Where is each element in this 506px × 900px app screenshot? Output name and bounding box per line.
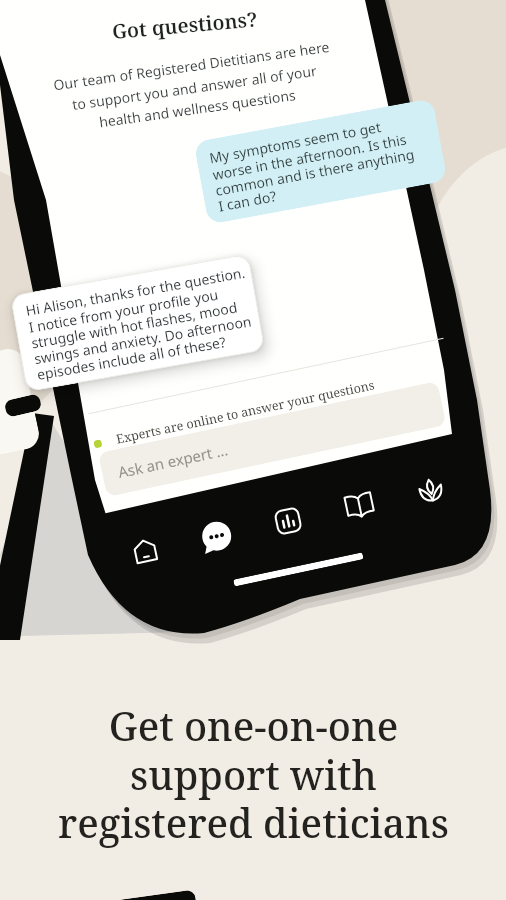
staticText: Got questions? xyxy=(108,0,262,62)
staticText: Ask an expert ... xyxy=(116,439,230,482)
button[interactable]: Hi Alison, thanks for the question. I no… xyxy=(7,245,269,400)
button[interactable] xyxy=(407,467,455,514)
button[interactable]: Ask an expert ... xyxy=(98,381,447,497)
staticText: Get one-on-one support with registered d… xyxy=(58,699,449,849)
staticText: Our team of Registered Dietitians are he… xyxy=(48,18,341,156)
button[interactable] xyxy=(336,482,383,529)
button[interactable] xyxy=(264,497,312,545)
button[interactable] xyxy=(122,528,169,575)
staticText: Hi Alison, thanks for the question. I no… xyxy=(21,255,261,392)
staticText: My symptoms seem to get worse in the aft… xyxy=(206,107,421,221)
staticText: Experts are online to answer your questi… xyxy=(115,376,376,448)
button[interactable]: My symptoms seem to get worse in the aft… xyxy=(191,92,450,231)
button[interactable] xyxy=(193,512,240,560)
